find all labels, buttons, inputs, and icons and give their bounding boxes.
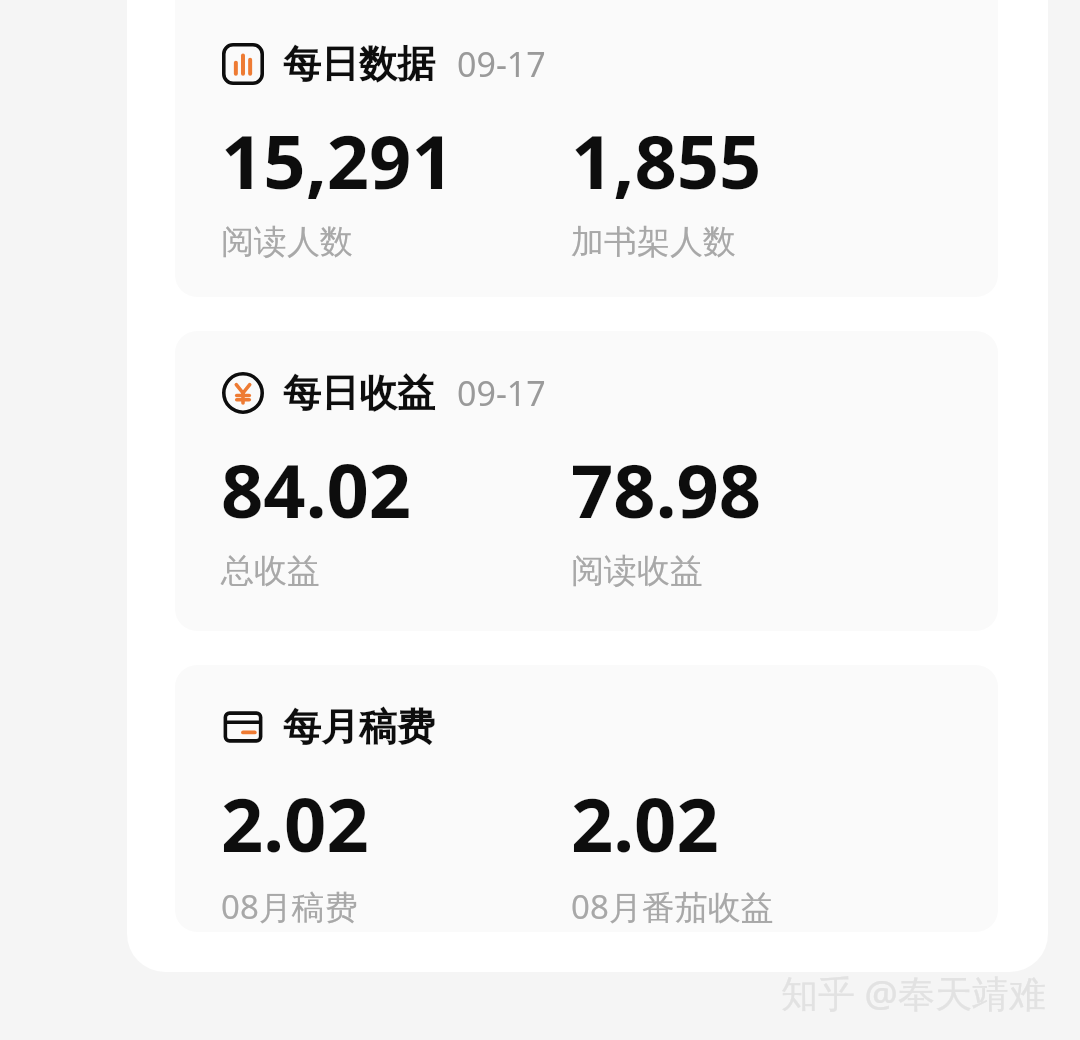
button[interactable]: 每月稿费 bbox=[175, 665, 998, 932]
staticText: 78.98 bbox=[571, 439, 762, 540]
staticText: 阅读人数 bbox=[221, 221, 353, 263]
staticText: 09-17 bbox=[457, 41, 546, 87]
staticText: 84.02 bbox=[221, 439, 412, 540]
staticText: 09-17 bbox=[457, 370, 546, 416]
staticText: 08月稿费 bbox=[221, 884, 358, 929]
button[interactable]: 每日收益 bbox=[175, 331, 998, 631]
staticText: 08月番茄收益 bbox=[571, 884, 774, 929]
staticText: 每日收益 bbox=[283, 369, 435, 417]
staticText: 2.02 bbox=[221, 773, 369, 874]
staticText: 每日数据 bbox=[283, 40, 435, 88]
staticText: 阅读收益 bbox=[571, 550, 703, 592]
staticText: 知乎 @奉天靖难 bbox=[781, 967, 1046, 1018]
staticText: 2.02 bbox=[571, 773, 719, 874]
staticText: 15,291 bbox=[221, 110, 454, 211]
staticText: 每月稿费 bbox=[283, 703, 435, 751]
staticText: 1,855 bbox=[571, 110, 762, 211]
staticText: 加书架人数 bbox=[571, 221, 736, 263]
staticText: 总收益 bbox=[221, 550, 320, 592]
button[interactable]: 每日数据 bbox=[175, 0, 998, 297]
